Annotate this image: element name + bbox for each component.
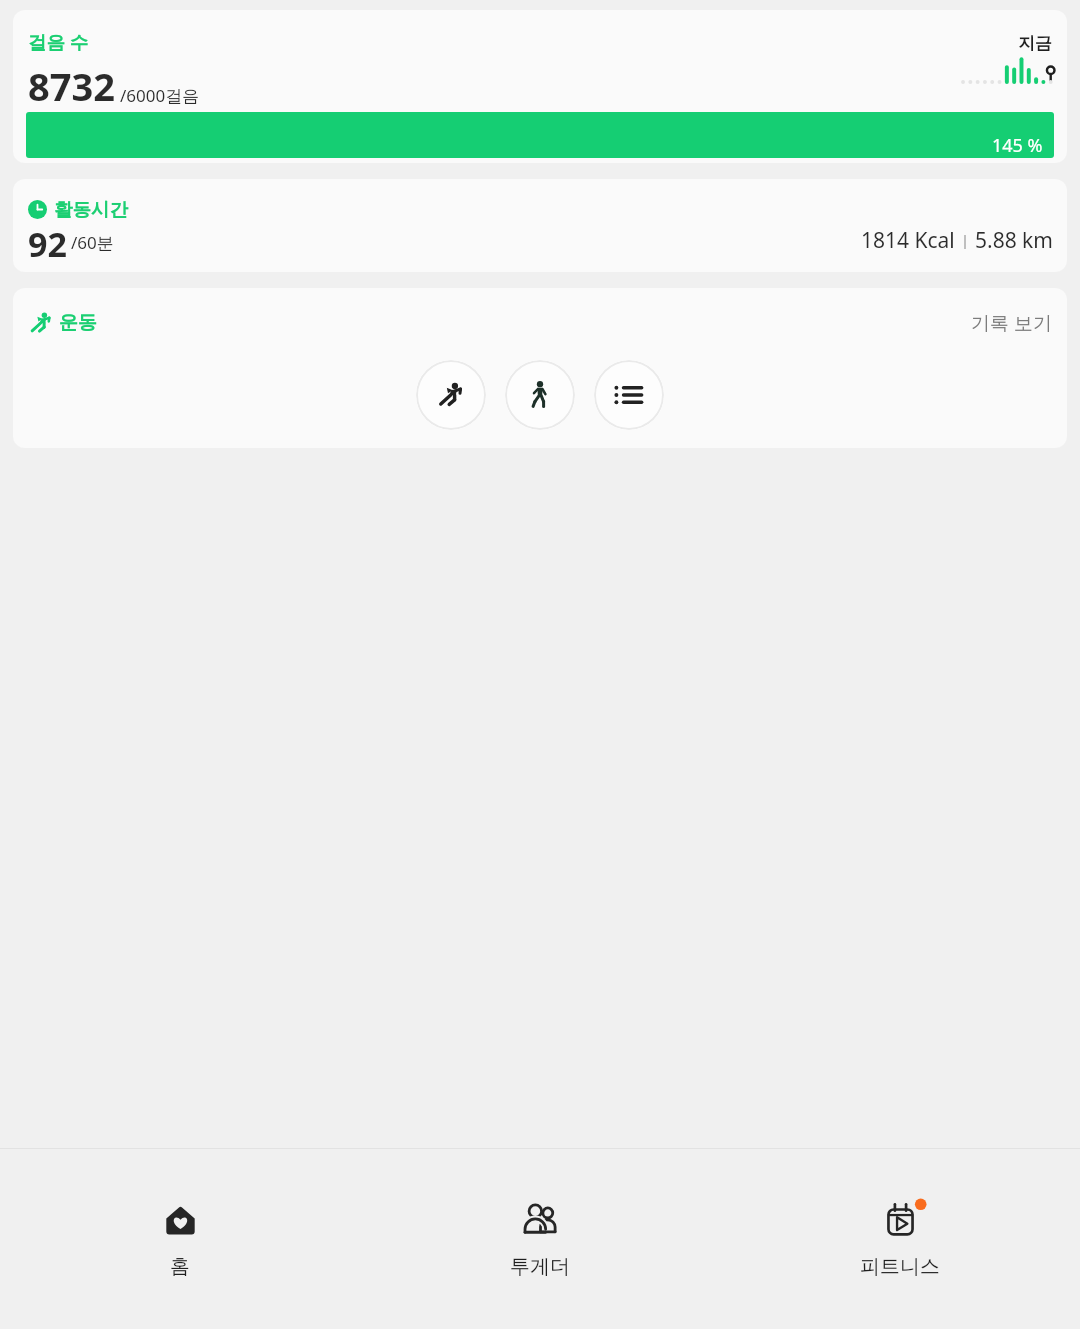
staticText: 활동시간	[54, 198, 128, 221]
staticText: 피트니스	[860, 1254, 940, 1279]
button[interactable]: 운동	[13, 288, 1067, 448]
button[interactable]: Start running	[416, 360, 486, 430]
staticText: 홈	[170, 1254, 190, 1279]
staticText: 92	[28, 221, 67, 258]
staticText: 5.88 km	[975, 226, 1053, 255]
staticText: 걸음 수	[28, 29, 89, 54]
staticText: /60분	[71, 231, 114, 254]
button[interactable]: Home	[0, 1149, 360, 1329]
button[interactable]: 걸음 수	[13, 10, 1067, 163]
button[interactable]: Fitness	[720, 1149, 1080, 1329]
button[interactable]: 기록 보기	[971, 310, 1052, 336]
button[interactable]: 활동시간	[13, 179, 1067, 272]
staticText: /6000걸음	[120, 84, 200, 107]
staticText: 145 %	[992, 133, 1043, 158]
button[interactable]: Together	[360, 1149, 720, 1329]
staticText: 지금	[1018, 33, 1052, 54]
staticText: 운동	[59, 311, 97, 335]
staticText: 투게더	[510, 1254, 570, 1279]
staticText: 기록 보기	[971, 310, 1052, 336]
button[interactable]: Start walking	[505, 360, 575, 430]
staticText: 1814 Kcal	[861, 226, 955, 255]
staticText: 8732	[28, 60, 115, 112]
button[interactable]: More exercises	[594, 360, 664, 430]
